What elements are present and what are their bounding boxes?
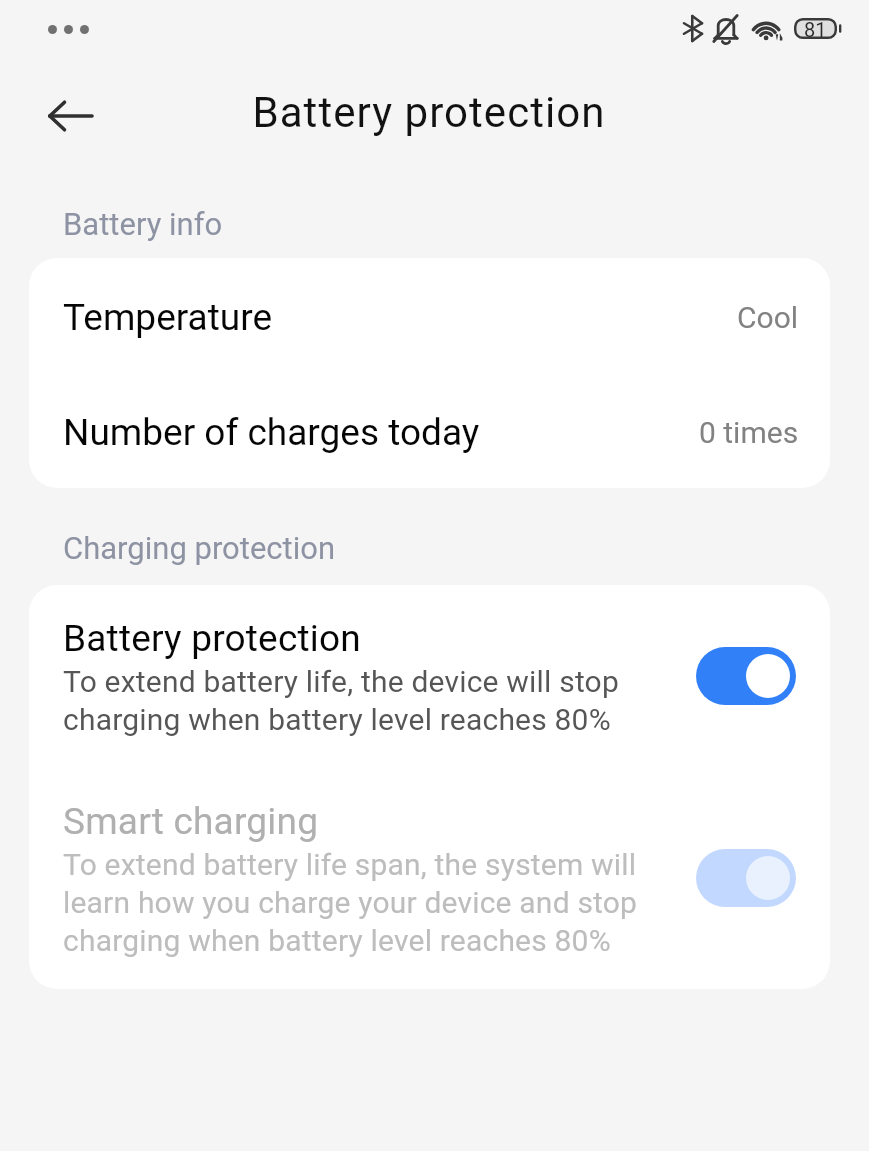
staticText: Battery info bbox=[63, 206, 223, 242]
button[interactable]: Smart charging bbox=[29, 768, 830, 989]
button[interactable]: Back bbox=[34, 80, 106, 152]
staticText: Temperature bbox=[63, 296, 273, 339]
staticText: To extend battery life, the device will … bbox=[63, 664, 663, 737]
staticText: To extend battery life span, the system … bbox=[63, 847, 663, 958]
staticText: Smart charging bbox=[63, 800, 319, 843]
button[interactable]: Battery protection bbox=[29, 585, 830, 768]
other: Notifications bbox=[48, 25, 90, 34]
button[interactable]: Smart charging toggle bbox=[696, 849, 796, 907]
staticText: 81 bbox=[804, 18, 827, 39]
staticText: Cool bbox=[737, 300, 799, 335]
staticText: Battery protection bbox=[252, 88, 606, 137]
staticText: Battery protection bbox=[63, 617, 361, 660]
button[interactable]: Number of charges today bbox=[29, 375, 830, 488]
staticText: Number of charges today bbox=[63, 411, 480, 454]
staticText: Charging protection bbox=[63, 530, 336, 566]
staticText: 0 times bbox=[699, 415, 799, 450]
button[interactable]: Temperature bbox=[29, 260, 830, 375]
button[interactable]: Battery protection toggle bbox=[696, 647, 796, 705]
